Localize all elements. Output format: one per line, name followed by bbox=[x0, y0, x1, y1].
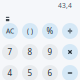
button[interactable]: AC bbox=[2, 23, 18, 39]
staticText: 6 bbox=[47, 68, 52, 78]
button[interactable]: 5 bbox=[22, 65, 38, 80]
button[interactable]: 8 bbox=[22, 44, 38, 60]
button[interactable]: Divide bbox=[62, 23, 78, 39]
button[interactable]: Multiply bbox=[62, 44, 78, 60]
staticText: AC bbox=[6, 27, 14, 35]
staticText: 43,4 bbox=[58, 1, 72, 10]
staticText: 7 bbox=[7, 47, 12, 57]
button[interactable]: Last operation bbox=[3, 14, 12, 23]
button[interactable]: ( ) bbox=[22, 23, 38, 39]
button[interactable]: 7 bbox=[2, 44, 18, 60]
staticText: % bbox=[46, 26, 53, 36]
button[interactable]: 9 bbox=[42, 44, 58, 60]
button[interactable]: 6 bbox=[42, 65, 58, 80]
button[interactable]: 4 bbox=[2, 65, 18, 80]
button[interactable]: Subtract bbox=[62, 65, 78, 80]
staticText: ( ) bbox=[27, 27, 33, 35]
staticText: 9 bbox=[47, 47, 52, 57]
staticText: 8 bbox=[27, 47, 32, 57]
button[interactable]: % bbox=[42, 23, 58, 39]
staticText: 4 bbox=[7, 68, 12, 78]
staticText: 5 bbox=[27, 68, 32, 78]
